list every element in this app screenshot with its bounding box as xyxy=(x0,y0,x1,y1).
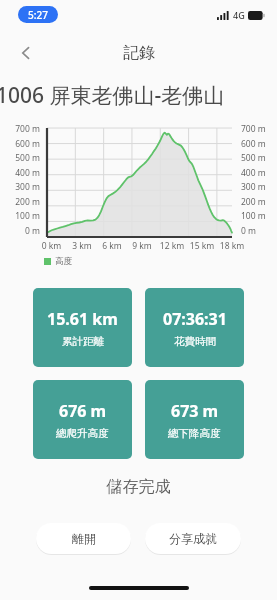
button[interactable]: 15.61 km xyxy=(33,288,132,367)
staticText: 離開 xyxy=(72,531,96,546)
button[interactable]: 673 m xyxy=(145,380,244,459)
staticText: 6 km xyxy=(97,240,127,252)
staticText: 儲存完成 xyxy=(0,477,277,497)
staticText: 500 m xyxy=(0,152,40,164)
staticText: 0 km xyxy=(36,240,67,252)
staticText: 400 m xyxy=(0,167,40,179)
staticText: 600 m xyxy=(0,138,40,150)
staticText: 700 m xyxy=(0,123,40,135)
staticText: 3 km xyxy=(67,240,97,252)
staticText: 700 m xyxy=(241,123,277,135)
staticText: 4G xyxy=(233,9,245,21)
staticText: 400 m xyxy=(241,167,277,179)
staticText: 18 km xyxy=(217,240,247,252)
staticText: 100 m xyxy=(0,210,40,222)
button[interactable]: 07:36:31 xyxy=(145,288,244,367)
button[interactable]: Back xyxy=(8,35,44,71)
staticText: 高度 xyxy=(55,256,72,267)
staticText: 15.61 km xyxy=(47,308,118,330)
button[interactable]: 676 m xyxy=(33,380,132,459)
staticText: 總爬升高度 xyxy=(56,427,109,440)
staticText: 5:27 xyxy=(28,8,48,22)
staticText: 300 m xyxy=(241,181,277,193)
button[interactable]: 離開 xyxy=(36,523,131,554)
staticText: 0 m xyxy=(241,225,277,237)
staticText: 0 m xyxy=(0,225,40,237)
button[interactable]: 51006 屏東老佛山-老佛山 xyxy=(0,76,277,114)
staticText: 673 m xyxy=(171,400,219,422)
staticText: 300 m xyxy=(0,181,40,193)
staticText: 12 km xyxy=(157,240,187,252)
staticText: 累計距離 xyxy=(62,335,104,348)
staticText: 15 km xyxy=(187,240,217,252)
staticText: 51006 屏東老佛山-老佛山 xyxy=(0,81,225,110)
staticText: 記錄 xyxy=(123,43,155,63)
staticText: 200 m xyxy=(241,196,277,208)
staticText: 600 m xyxy=(241,138,277,150)
staticText: 花費時間 xyxy=(174,335,216,348)
staticText: 07:36:31 xyxy=(163,308,227,330)
staticText: 500 m xyxy=(241,152,277,164)
staticText: 分享成就 xyxy=(169,531,217,546)
staticText: 總下降高度 xyxy=(168,427,221,440)
button[interactable]: 分享成就 xyxy=(145,523,241,554)
staticText: 200 m xyxy=(0,196,40,208)
staticText: 9 km xyxy=(127,240,157,252)
staticText: 676 m xyxy=(59,400,107,422)
staticText: 100 m xyxy=(241,210,277,222)
